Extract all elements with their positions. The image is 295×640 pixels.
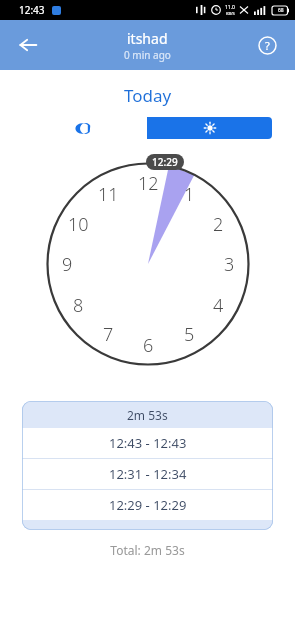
button[interactable]: 12:43 - 12:43	[22, 428, 273, 458]
staticText: 5	[184, 322, 195, 347]
button[interactable]: Help	[247, 25, 287, 65]
button[interactable]: 12:29 - 12:29	[22, 490, 273, 520]
button[interactable]: Back	[8, 25, 48, 65]
staticText: 9	[62, 252, 73, 277]
staticText: 6	[143, 333, 154, 358]
staticText: 12:43	[19, 3, 45, 17]
staticText: 2	[213, 212, 224, 237]
staticText: 0 min ago	[124, 48, 171, 62]
staticText: 3	[224, 252, 235, 277]
staticText: 12:31 - 12:34	[109, 465, 187, 483]
staticText: 12:29 - 12:29	[109, 496, 187, 514]
staticText: ?	[265, 38, 270, 53]
button[interactable]: Night	[23, 117, 147, 139]
staticText: 7	[103, 322, 114, 347]
staticText: KB/S	[226, 11, 235, 16]
staticText: 68	[278, 7, 284, 14]
staticText: 12:29	[152, 155, 178, 169]
staticText: 12:43 - 12:43	[109, 434, 187, 452]
staticText: 10	[68, 212, 89, 237]
staticText: 11	[98, 182, 119, 207]
staticText: 4	[213, 293, 224, 318]
button[interactable]: Day	[147, 117, 272, 139]
staticText: Total: 2m 53s	[0, 542, 295, 558]
staticText: Today	[0, 84, 295, 107]
button[interactable]: 12:31 - 12:34	[22, 459, 273, 489]
button[interactable]: 2m 53s	[22, 401, 273, 428]
staticText: 12	[138, 171, 159, 196]
staticText: 1	[184, 182, 195, 207]
staticText: 2m 53s	[127, 407, 168, 423]
staticText: 8	[73, 293, 84, 318]
staticText: 11.0	[225, 4, 235, 11]
staticText: itshad	[127, 29, 168, 48]
button[interactable]: 12:29	[146, 154, 184, 170]
